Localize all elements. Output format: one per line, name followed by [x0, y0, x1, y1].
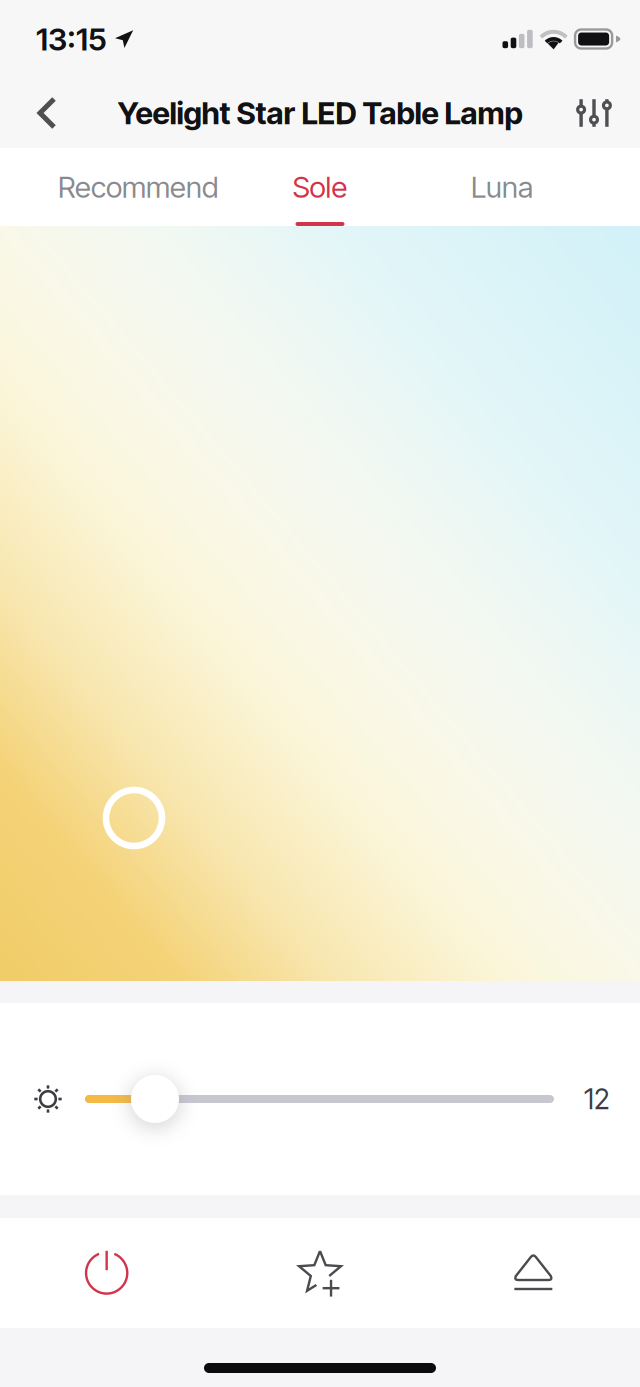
staticText: Sole [292, 169, 347, 205]
button[interactable]: Add to favourites [213, 1218, 427, 1328]
button[interactable]: Power [0, 1218, 213, 1328]
staticText: Recommend [58, 169, 218, 205]
button[interactable]: Sole [229, 148, 411, 226]
staticText: 13:15 [36, 20, 107, 58]
button[interactable]: Settings [563, 81, 625, 145]
staticText: Luna [471, 169, 533, 205]
staticText: Yeelight Star LED Table Lamp [117, 94, 522, 131]
button[interactable]: Recommend [47, 148, 229, 226]
button[interactable]: Luna [411, 148, 593, 226]
staticText: 12 [584, 1082, 610, 1116]
button[interactable]: Eject [427, 1218, 640, 1328]
button[interactable]: Back [16, 81, 78, 145]
